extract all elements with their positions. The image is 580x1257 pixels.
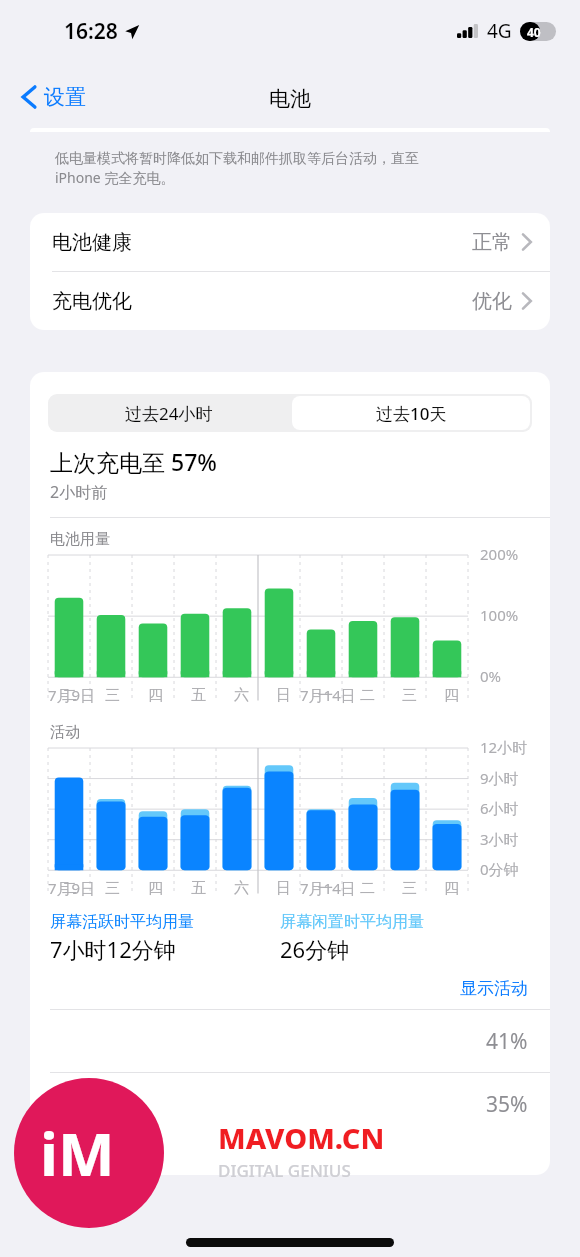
staticText: 200%	[480, 544, 519, 564]
button[interactable]: 显示活动	[460, 978, 528, 999]
staticText: 7月14日	[300, 878, 356, 898]
staticText: 一	[318, 879, 333, 898]
staticText: 二	[62, 879, 77, 898]
staticText: 7月14日	[300, 685, 356, 705]
staticText: 日	[276, 686, 291, 705]
staticText: 三	[402, 686, 417, 705]
staticText: 0分钟	[480, 859, 519, 879]
button[interactable]: 设置	[14, 80, 94, 114]
staticText: 日	[276, 879, 291, 898]
staticText: 7小时12分钟	[50, 934, 176, 964]
staticText: 二	[62, 686, 77, 705]
other: Battery Health	[522, 233, 532, 251]
staticText: 三	[402, 879, 417, 898]
staticText: 三	[105, 879, 120, 898]
staticText: 9小时	[480, 768, 519, 788]
staticText: 活动	[50, 723, 80, 742]
button[interactable]: 电池健康	[30, 213, 550, 271]
staticText: 过去10天	[376, 402, 447, 425]
staticText: 屏幕活跃时平均用量	[50, 912, 194, 932]
staticText: 3小时	[480, 829, 519, 849]
staticText: 6小时	[480, 798, 519, 818]
staticText: 四	[444, 879, 459, 898]
staticText: 7月9日	[48, 685, 96, 705]
staticText: 六	[234, 686, 249, 705]
staticText: 过去24小时	[125, 402, 213, 425]
staticText: 五	[191, 879, 206, 898]
staticText: 35%	[486, 1090, 528, 1119]
staticText: iM	[40, 1112, 115, 1194]
staticText: 二	[360, 686, 375, 705]
staticText: 0%	[480, 666, 502, 686]
staticText: 四	[148, 879, 163, 898]
button[interactable]: 41%	[30, 1010, 550, 1072]
staticText: 电池用量	[50, 530, 110, 549]
staticText: 六	[234, 879, 249, 898]
staticText: 26分钟	[280, 934, 350, 964]
staticText: 设置	[44, 84, 86, 110]
staticText: 显示活动	[460, 978, 528, 999]
staticText: 2小时前	[50, 481, 108, 503]
staticText: 40	[527, 24, 541, 40]
staticText: 屏幕闲置时平均用量	[280, 912, 424, 932]
button[interactable]: 充电优化	[30, 272, 550, 330]
staticText: DIGITAL GENIUS	[218, 1159, 351, 1182]
staticText: 电池	[269, 86, 311, 112]
staticText: 100%	[480, 605, 519, 625]
staticText: 五	[191, 686, 206, 705]
staticText: 上次充电至 57%	[50, 446, 217, 477]
staticText: 正常	[472, 230, 512, 255]
staticText: 充电优化	[52, 289, 132, 314]
staticText: 四	[148, 686, 163, 705]
staticText: 一	[318, 686, 333, 705]
staticText: 16:28	[64, 17, 118, 46]
staticText: 低电量模式将暂时降低如下载和邮件抓取等后台活动，直至 iPhone 完全充电。	[55, 150, 419, 187]
staticText: 四	[444, 686, 459, 705]
other: Charging Optimization	[522, 292, 532, 310]
staticText: 二	[360, 879, 375, 898]
staticText: 7月9日	[48, 878, 96, 898]
button[interactable]: 35%	[30, 1073, 550, 1135]
button[interactable]: 过去10天	[292, 396, 530, 430]
staticText: MAVOM.CN	[218, 1118, 385, 1157]
staticText: 12小时	[480, 737, 528, 757]
staticText: 三	[105, 686, 120, 705]
staticText: 41%	[486, 1027, 528, 1056]
staticText: 4G	[487, 18, 512, 44]
staticText: 电池健康	[52, 230, 132, 255]
button[interactable]: 过去24小时	[48, 394, 290, 432]
staticText: 优化	[472, 289, 512, 314]
